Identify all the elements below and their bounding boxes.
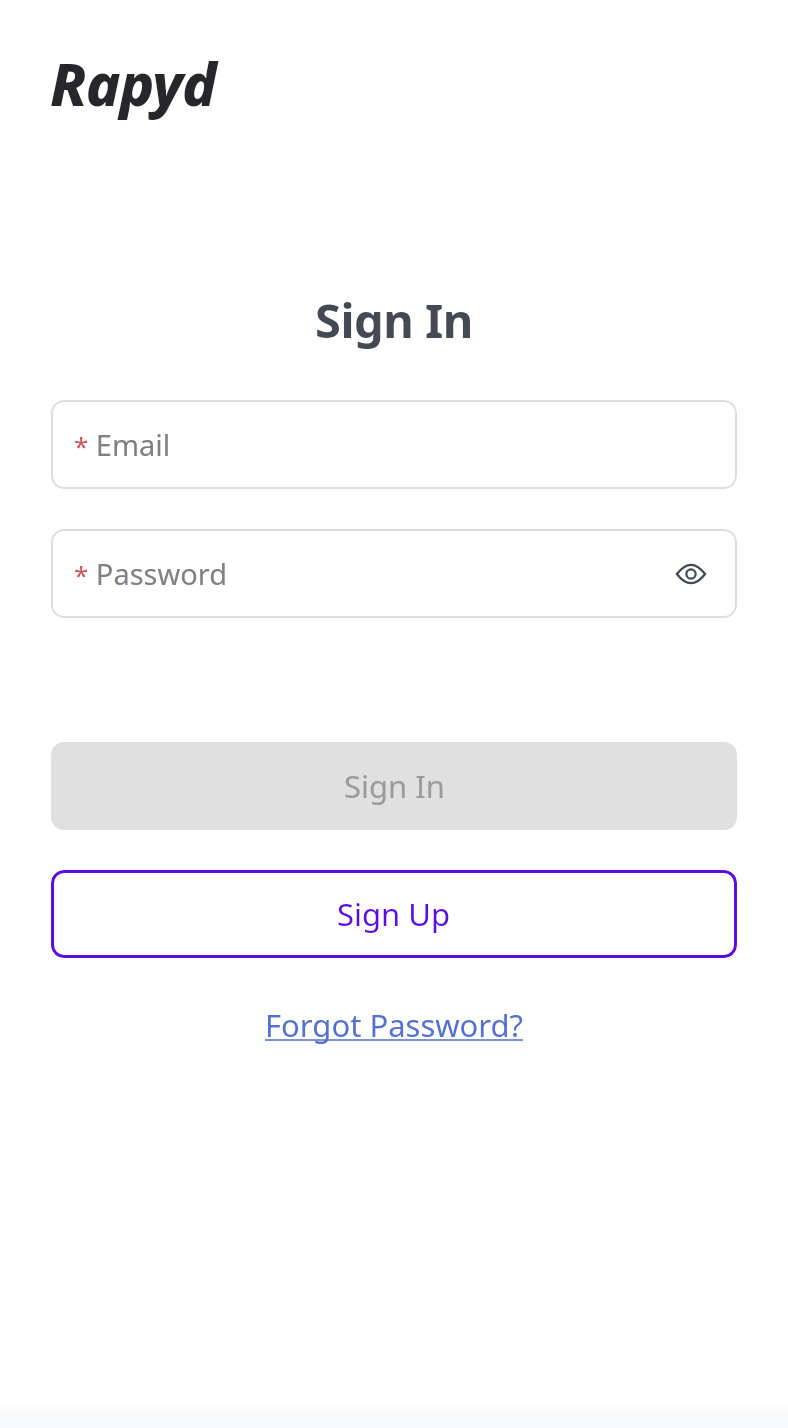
button[interactable]: * Password — [51, 529, 737, 618]
button[interactable]: Rapyd — [50, 44, 216, 123]
staticText: * Password — [74, 554, 228, 593]
button[interactable]: Show password — [661, 544, 721, 604]
staticText: Rapyd — [50, 44, 216, 123]
button[interactable]: * Email — [51, 400, 737, 489]
staticText: Sign In — [344, 765, 445, 807]
staticText: * Email — [74, 425, 171, 464]
staticText: Sign In — [315, 288, 473, 352]
button[interactable]: Sign Up — [51, 870, 737, 958]
button[interactable]: Sign In — [51, 742, 737, 830]
staticText: Sign Up — [337, 893, 451, 935]
button[interactable]: Forgot Password? — [259, 1000, 530, 1050]
staticText: Forgot Password? — [265, 1004, 524, 1046]
